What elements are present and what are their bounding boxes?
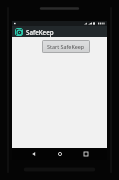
button[interactable]: Home — [47, 148, 73, 160]
other: SafeKeep app icon — [15, 28, 23, 36]
button[interactable]: Recent apps — [73, 148, 99, 160]
staticText: SafeKeep — [26, 28, 54, 36]
button[interactable]: Start SafeKeep — [42, 40, 90, 53]
button[interactable]: Back — [21, 148, 47, 160]
staticText: Start SafeKeep — [47, 43, 85, 50]
